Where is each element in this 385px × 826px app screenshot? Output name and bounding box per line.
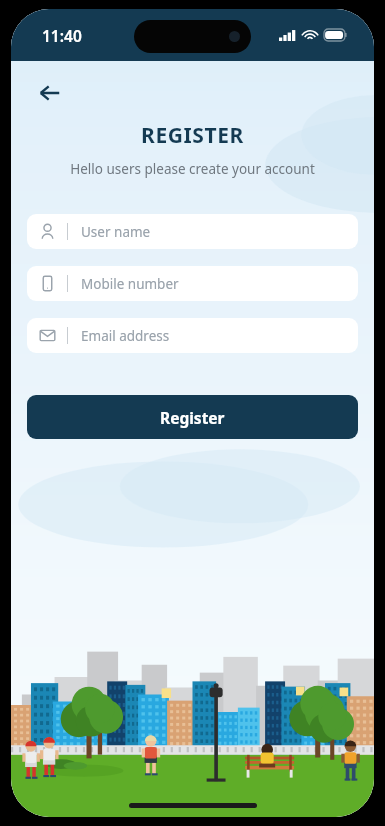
staticText: Mobile number	[81, 275, 179, 293]
staticText: REGISTER	[141, 121, 244, 150]
staticText: 11:40	[42, 25, 82, 46]
button[interactable]: Email address	[27, 318, 358, 353]
staticText: Register	[160, 407, 225, 428]
button[interactable]: Back	[28, 71, 72, 115]
staticText: Hello users please create your account	[70, 160, 315, 178]
button[interactable]: Mobile number	[27, 266, 358, 301]
button[interactable]: User name	[27, 214, 358, 249]
staticText: Email address	[81, 327, 170, 345]
staticText: User name	[81, 223, 151, 241]
button[interactable]: Register	[27, 395, 358, 439]
